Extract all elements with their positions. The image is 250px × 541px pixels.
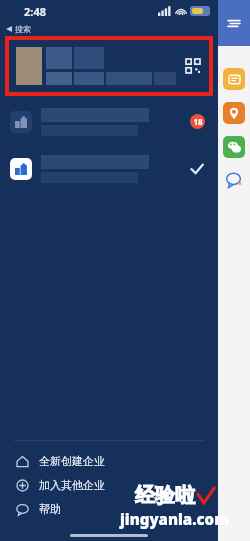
button[interactable]: 加入其他企业 (16, 473, 218, 497)
staticText: 18 (193, 116, 203, 127)
staticText: 经验啦 (135, 483, 195, 508)
button[interactable]: 菜单 (218, 0, 250, 46)
staticText: 搜索 (15, 24, 31, 34)
staticText: jingyanla.com (120, 509, 230, 529)
button[interactable]: 帮助 (16, 497, 218, 521)
button[interactable]: 应用 (223, 68, 245, 90)
button[interactable]: 二维码 (186, 59, 200, 73)
button[interactable]: 18 (10, 98, 208, 145)
button[interactable]: 已选择 (10, 145, 208, 192)
button[interactable]: 应用 (223, 136, 245, 158)
button[interactable]: 全新创建企业 (16, 449, 218, 473)
staticText: 加入其他企业 (39, 478, 105, 492)
other: 已选择 (190, 162, 204, 176)
staticText: 2:48 (24, 4, 46, 19)
button[interactable]: 搜索 (6, 22, 31, 36)
staticText: 全新创建企业 (39, 454, 105, 468)
button[interactable]: 二维码 (10, 41, 208, 91)
button[interactable]: 应用 (223, 102, 245, 124)
staticText: 帮助 (39, 502, 61, 516)
